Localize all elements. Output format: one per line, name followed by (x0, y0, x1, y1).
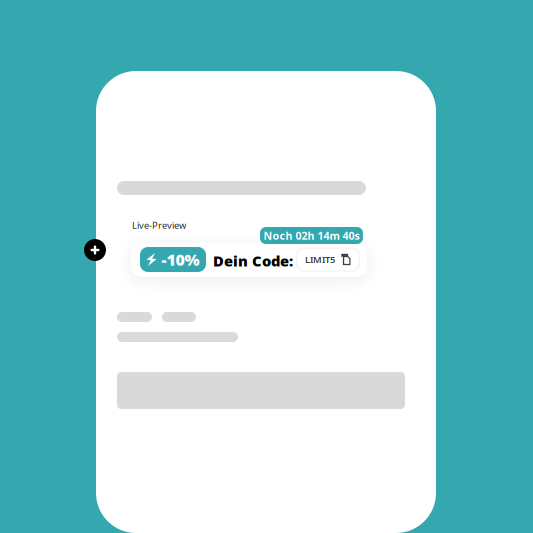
button[interactable]: -10% (140, 247, 206, 272)
staticText: Live-Preview (132, 219, 186, 231)
staticText: LIMIT5 (305, 253, 335, 266)
staticText: Dein Code: (213, 251, 293, 270)
button[interactable]: Copy code LIMIT5 (297, 248, 359, 271)
button[interactable]: Add (84, 239, 106, 261)
staticText: Noch 02h 14m 40s (263, 228, 359, 243)
staticText: -10% (161, 249, 199, 270)
